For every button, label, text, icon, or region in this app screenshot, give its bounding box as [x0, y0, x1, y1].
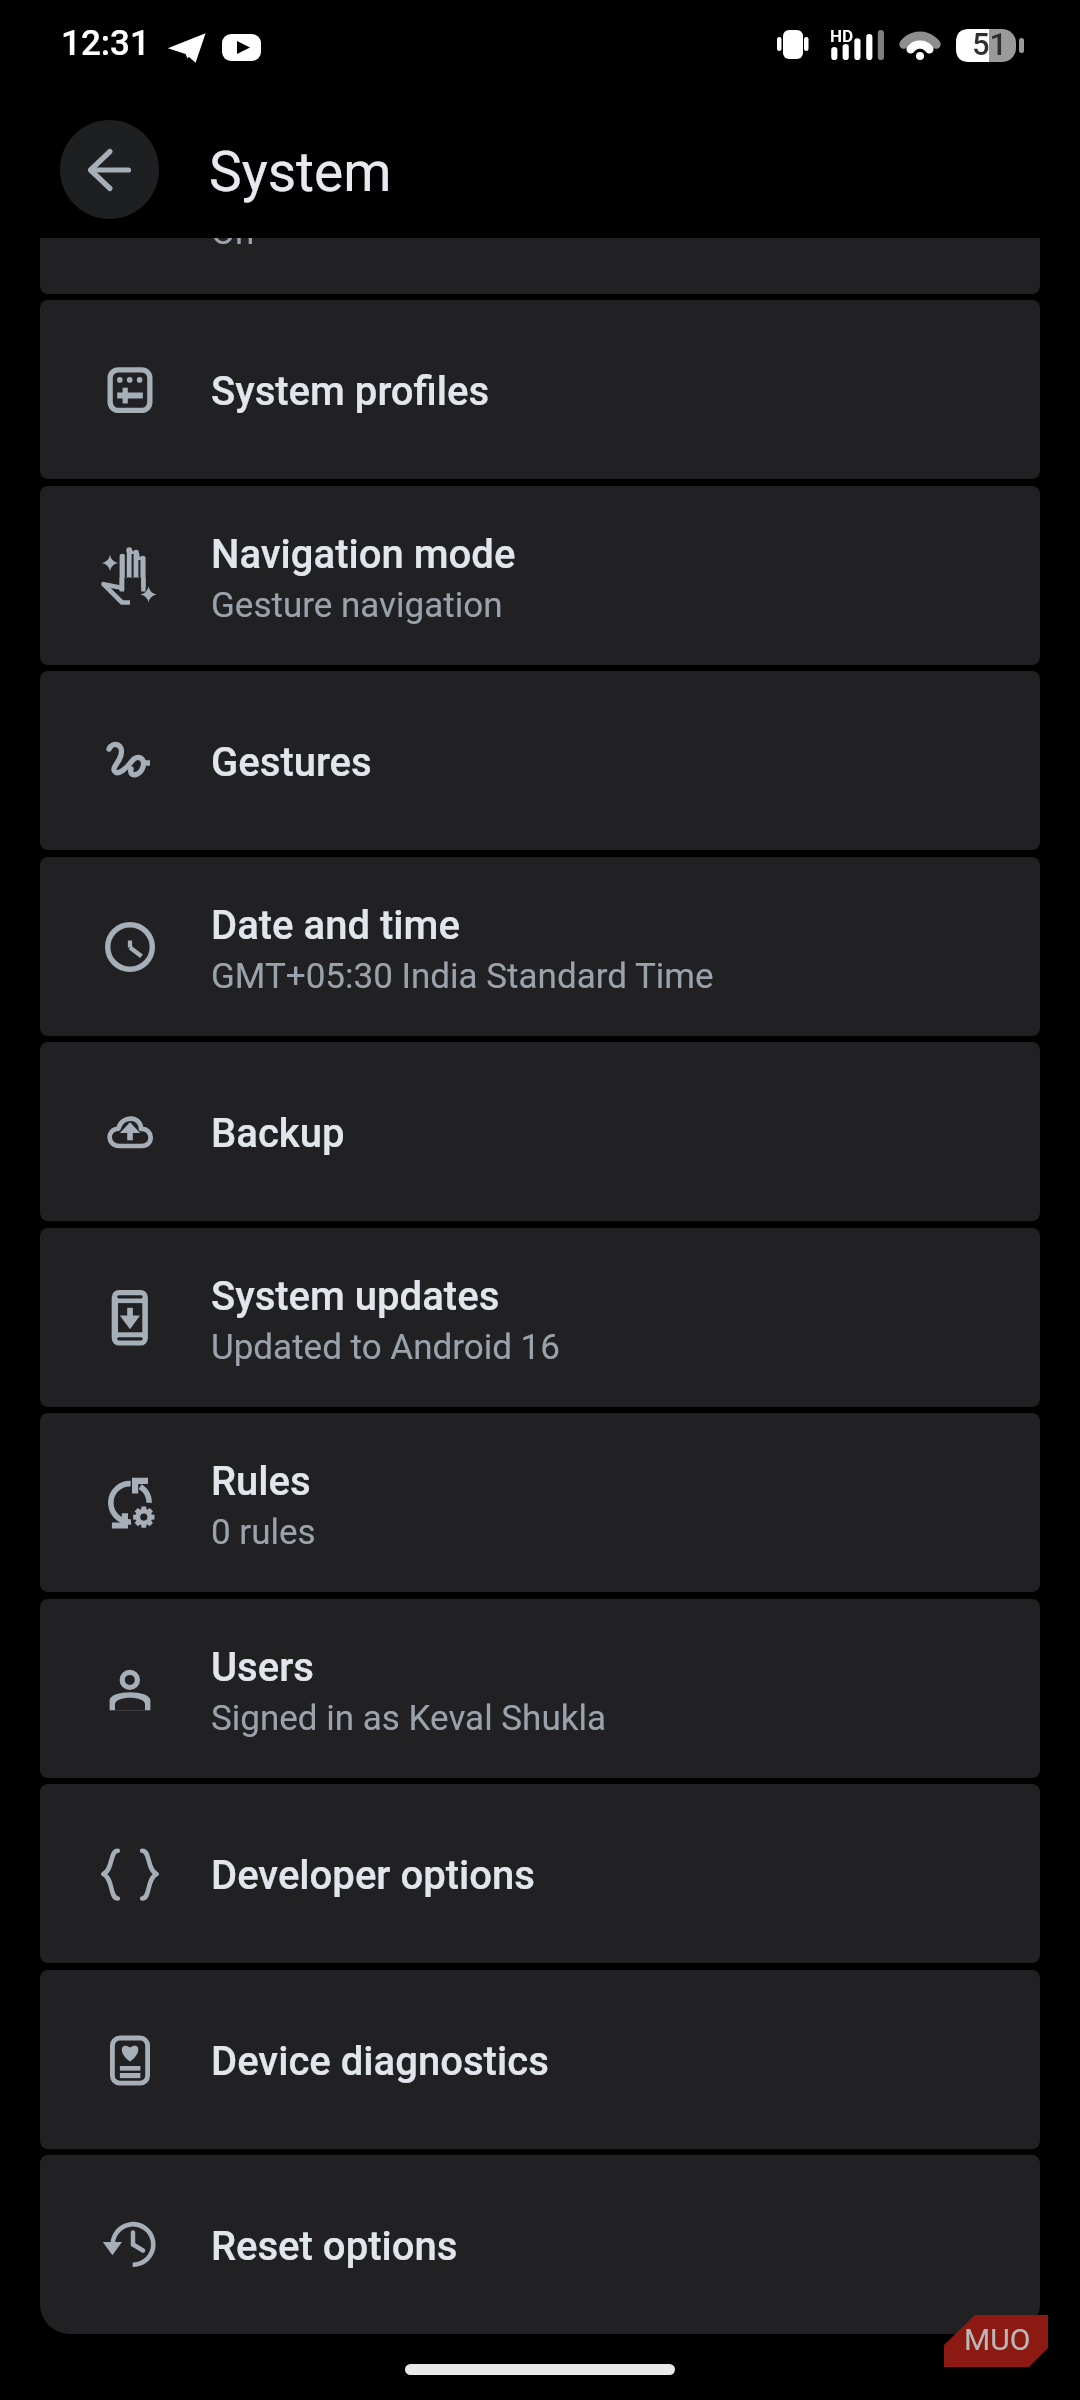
- button[interactable]: Back: [60, 120, 159, 219]
- button[interactable]: Users: [40, 1599, 1040, 1778]
- staticText: 0 rules: [211, 1512, 316, 1553]
- button[interactable]: Backup: [40, 1042, 1040, 1221]
- staticText: Rules: [211, 1458, 311, 1505]
- staticText: Gestures: [211, 739, 372, 786]
- button[interactable]: Device diagnostics: [40, 1970, 1040, 2149]
- staticText: Reset options: [211, 2223, 458, 2270]
- staticText: Device diagnostics: [211, 2038, 549, 2085]
- button[interactable]: Gestures: [40, 671, 1040, 850]
- staticText: Gesture navigation: [211, 585, 503, 626]
- staticText: Backup: [211, 1110, 345, 1157]
- staticText: Developer options: [211, 1852, 535, 1899]
- staticText: GMT+05:30 India Standard Time: [211, 956, 714, 997]
- button[interactable]: Navigation mode: [40, 486, 1040, 665]
- staticText: System profiles: [211, 368, 490, 415]
- staticText: Users: [211, 1644, 314, 1691]
- staticText: 12:31: [61, 23, 150, 64]
- button[interactable]: Reset options: [40, 2155, 1040, 2334]
- staticText: MUO: [964, 2322, 1031, 2357]
- button[interactable]: Rules: [40, 1413, 1040, 1592]
- staticText: System updates: [211, 1273, 500, 1320]
- staticText: Navigation mode: [211, 531, 516, 578]
- staticText: 51: [972, 26, 1008, 62]
- button[interactable]: On: [40, 115, 1040, 294]
- staticText: Signed in as Keval Shukla: [211, 1698, 606, 1739]
- button[interactable]: System updates: [40, 1228, 1040, 1407]
- staticText: HD: [830, 26, 854, 46]
- staticText: Date and time: [211, 902, 460, 949]
- staticText: System: [209, 140, 392, 204]
- button[interactable]: Developer options: [40, 1784, 1040, 1963]
- button[interactable]: System profiles: [40, 300, 1040, 479]
- staticText: On: [211, 212, 255, 253]
- button[interactable]: Date and time: [40, 857, 1040, 1036]
- staticText: Updated to Android 16: [211, 1327, 560, 1368]
